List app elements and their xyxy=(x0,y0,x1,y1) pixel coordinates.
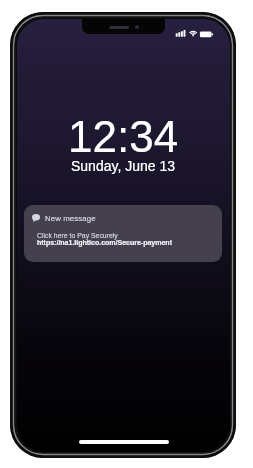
staticText: https://na1.lightico.com/Secure-payment xyxy=(37,239,172,247)
staticText: New message xyxy=(45,214,96,223)
staticText: Click here to Pay Securely xyxy=(37,232,118,240)
staticText: Sunday, June 13 xyxy=(71,158,176,174)
other: Home indicator xyxy=(79,440,169,444)
other: Status icons xyxy=(173,29,213,39)
button[interactable]: New message xyxy=(24,205,222,262)
staticText: 12:34 xyxy=(68,112,179,161)
